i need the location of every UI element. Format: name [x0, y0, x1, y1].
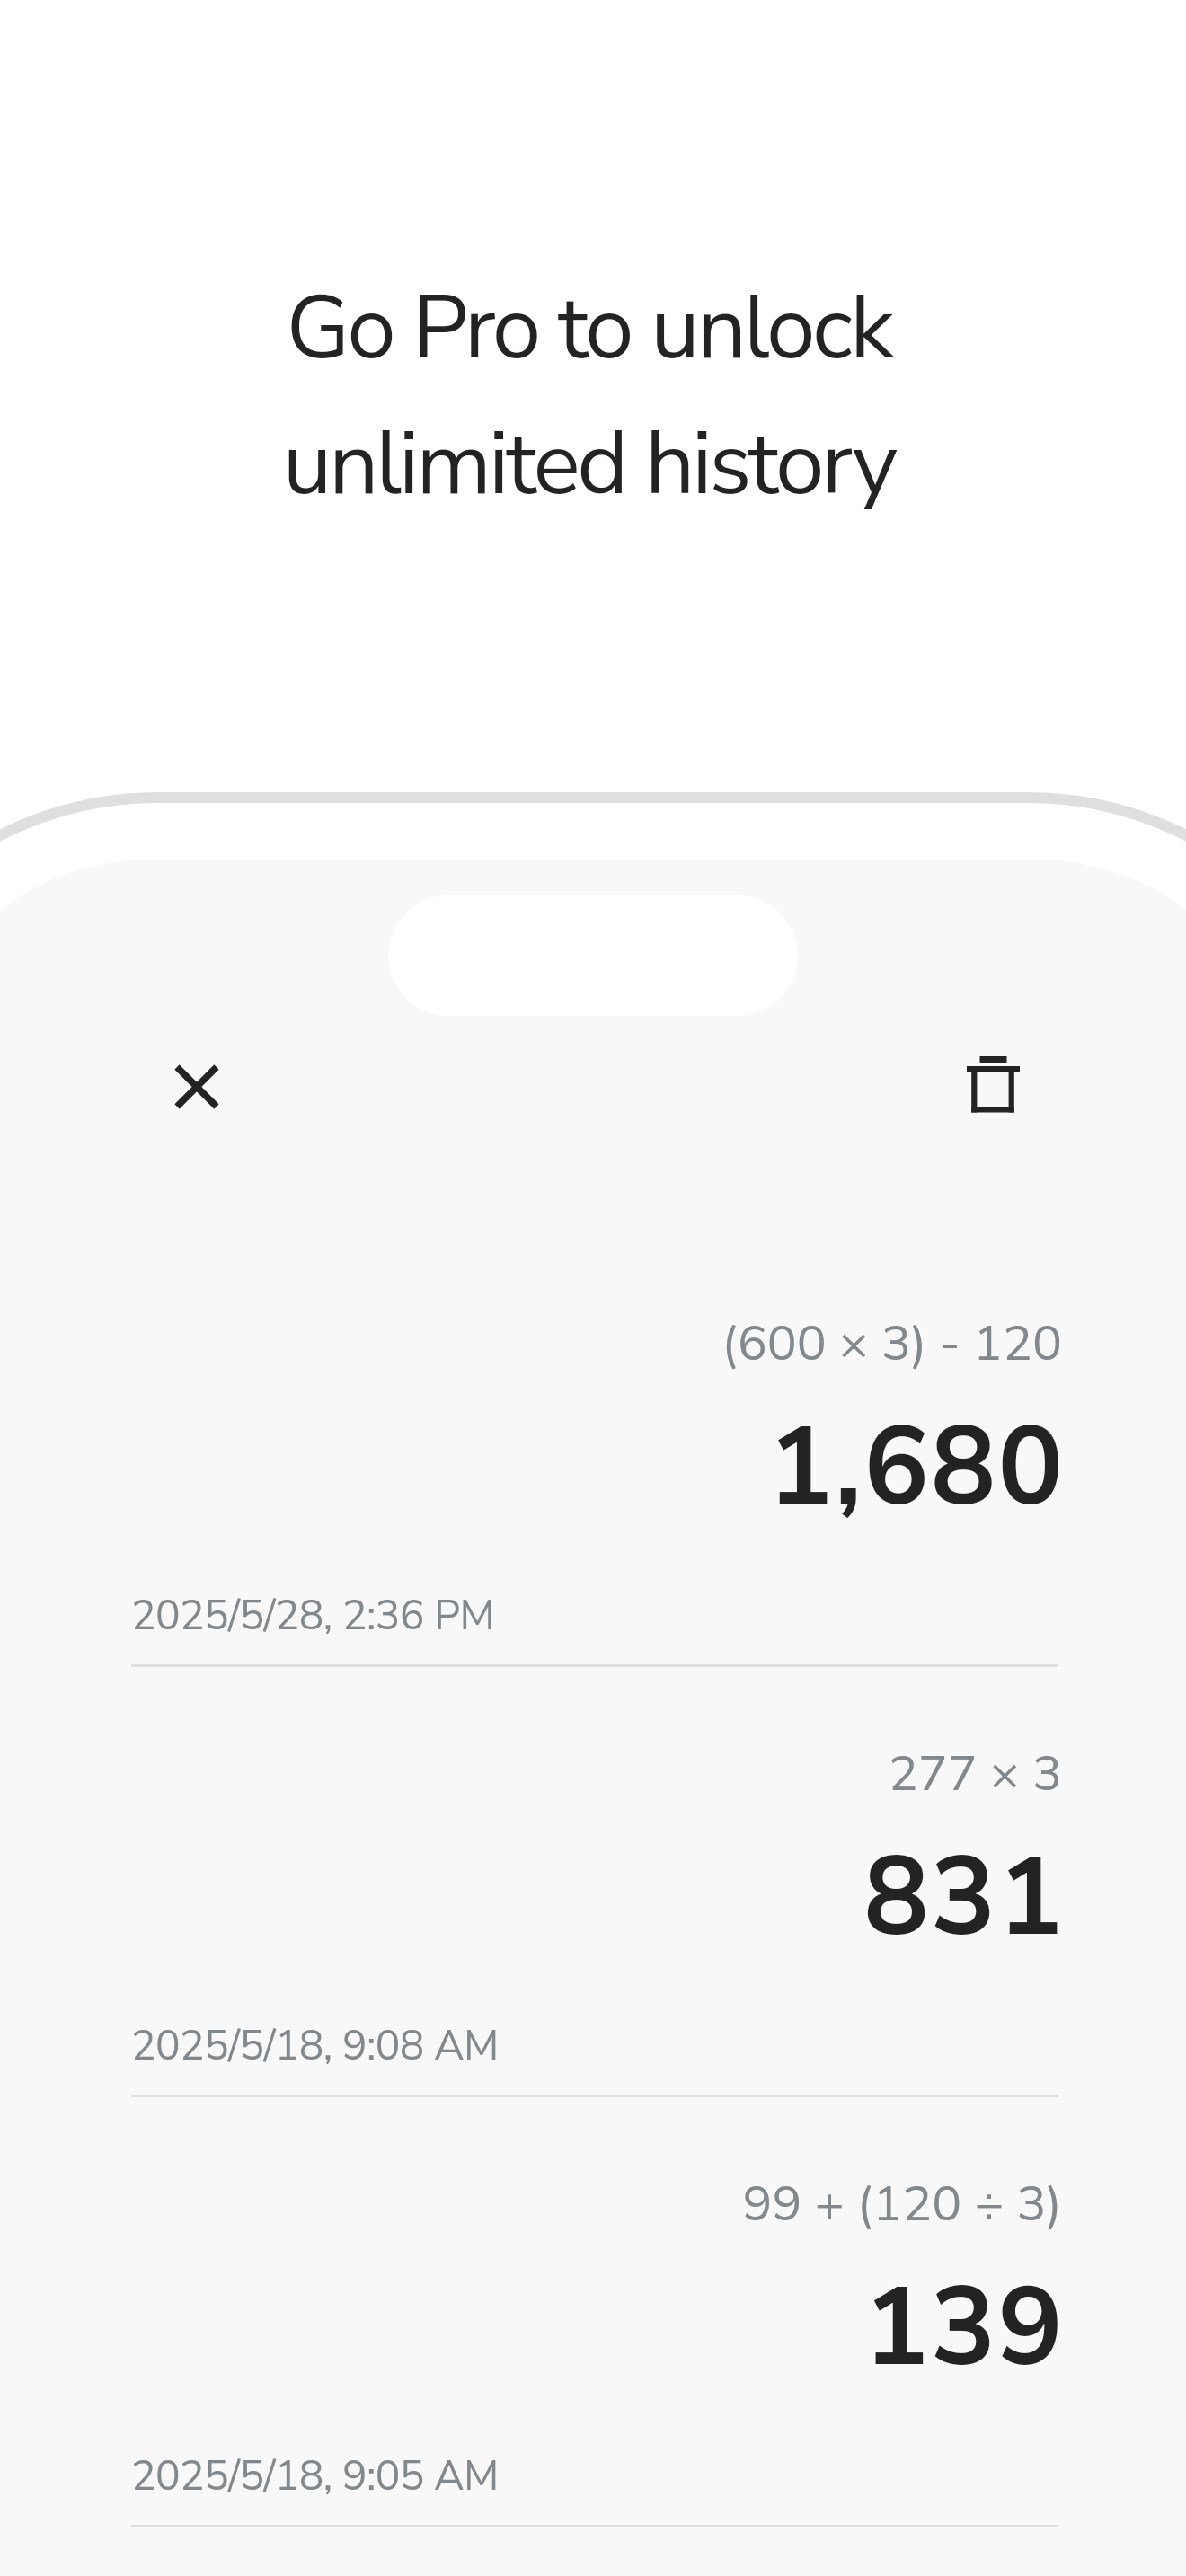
button[interactable]: 277 × 3: [0, 1665, 1186, 2095]
staticText: 2025/5/18, 9:05 AM: [131, 2448, 1058, 2504]
staticText: 99 + (120 ÷ 3): [131, 2170, 1062, 2237]
staticText: 2025/5/18, 9:08 AM: [131, 2017, 1058, 2074]
button[interactable]: Delete history: [903, 994, 1083, 1174]
staticText: 1,680: [131, 1394, 1065, 1542]
staticText: 139: [131, 2254, 1065, 2403]
button[interactable]: Close: [107, 997, 287, 1177]
staticText: 277 × 3: [131, 1740, 1062, 1807]
button[interactable]: (600 × 3) - 120: [0, 1235, 1186, 1665]
staticText: (600 × 3) - 120: [131, 1310, 1062, 1377]
staticText: Go Pro to unlock unlimited history: [0, 269, 1182, 525]
staticText: 831: [131, 1824, 1065, 1972]
staticText: 2025/5/28, 2:36 PM: [131, 1587, 1058, 1644]
button[interactable]: 99 + (120 ÷ 3): [0, 2095, 1186, 2526]
